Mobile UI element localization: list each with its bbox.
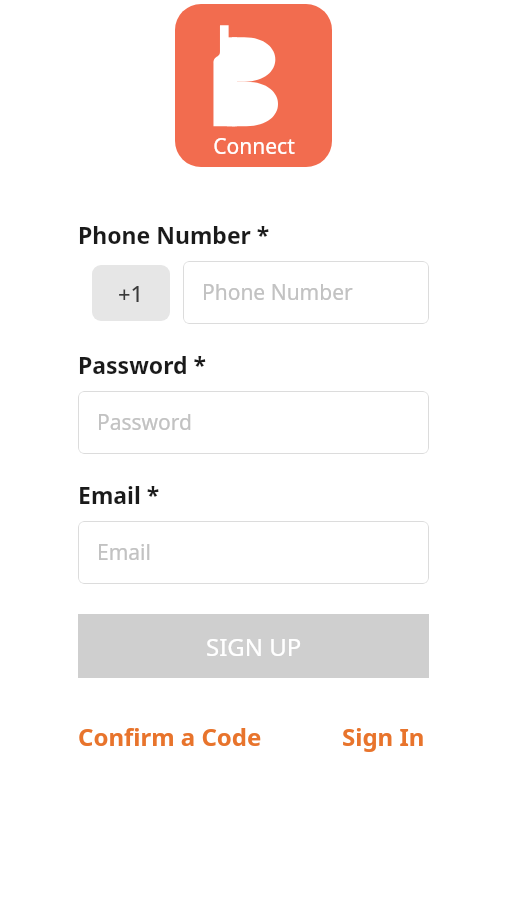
button[interactable]: SIGN UP [78,614,429,678]
button[interactable]: Phone Number [183,261,429,324]
staticText: SIGN UP [206,630,302,663]
other: B Connect logo [175,4,332,167]
staticText: Password * [78,349,207,380]
staticText: Connect [213,132,295,161]
staticText: Email * [78,479,160,510]
staticText: Email [97,538,151,567]
button[interactable]: Password [78,391,429,454]
staticText: Confirm a Code [78,720,262,753]
button[interactable]: +1 [92,265,170,321]
button[interactable]: Email [78,521,429,584]
staticText: +1 [118,278,144,308]
button[interactable]: Confirm a Code [78,714,262,759]
button[interactable]: Sign In [338,714,429,759]
staticText: Password [97,408,192,437]
staticText: Phone Number [202,278,353,307]
staticText: Sign In [342,720,425,753]
staticText: Phone Number * [78,219,270,250]
